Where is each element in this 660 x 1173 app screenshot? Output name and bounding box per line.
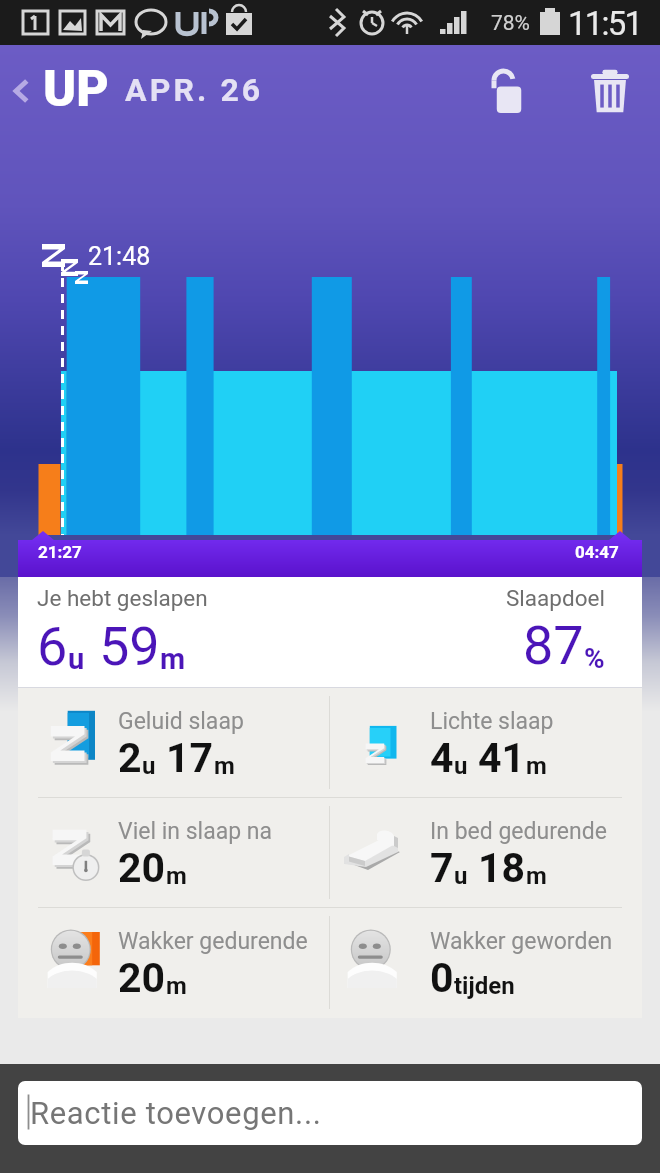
staticText: Slaapdoel <box>506 585 605 611</box>
staticText: u <box>68 642 85 676</box>
staticText: 17 <box>166 734 214 782</box>
staticText: m <box>166 862 187 890</box>
staticText: Reactie toevoegen... <box>30 1095 322 1131</box>
button[interactable]: Viel in slaap na <box>18 798 329 907</box>
staticText: In bed gedurende <box>430 818 607 845</box>
button[interactable]: Wakker geworden <box>330 908 642 1017</box>
button[interactable]: Reactie toevoegen... <box>18 1081 642 1145</box>
staticText: 87 <box>523 614 584 677</box>
staticText: m <box>214 752 235 780</box>
staticText: m <box>166 972 187 1000</box>
staticText: Viel in slaap na <box>118 818 273 845</box>
staticText: m <box>526 752 547 780</box>
staticText: 20 <box>118 954 166 1002</box>
staticText: Geluid slaap <box>118 708 244 735</box>
staticText: Je hebt geslapen <box>37 585 208 611</box>
button[interactable]: In bed gedurende <box>330 798 642 907</box>
staticText: 41 <box>478 734 526 782</box>
staticText: 20 <box>118 844 166 892</box>
button[interactable]: Unlock <box>480 63 536 119</box>
staticText: 78% <box>491 11 530 36</box>
staticText: 7 <box>430 844 454 892</box>
staticText: % <box>584 642 605 675</box>
staticText: u <box>142 752 156 780</box>
button[interactable]: Je hebt geslapen <box>18 577 642 687</box>
button[interactable]: Lichte slaap <box>330 688 642 797</box>
staticText: APR. 26 <box>125 71 264 109</box>
staticText: 0 <box>430 954 454 1002</box>
button[interactable]: Back <box>2 71 42 111</box>
staticText: u <box>454 752 468 780</box>
staticText: u <box>454 862 468 890</box>
staticText: 21:27 <box>38 542 82 562</box>
staticText: m <box>526 862 547 890</box>
staticText: tijden <box>454 972 515 1000</box>
staticText: 59 <box>99 615 160 678</box>
staticText: 2 <box>118 734 142 782</box>
staticText: Wakker gedurende <box>118 928 308 955</box>
staticText: 6 <box>37 615 68 678</box>
button[interactable]: Wakker gedurende <box>18 908 329 1017</box>
staticText: UP <box>43 60 109 119</box>
staticText: m <box>160 642 186 676</box>
staticText: 04:47 <box>575 542 619 562</box>
staticText: 18 <box>478 844 526 892</box>
button[interactable]: Geluid slaap <box>18 688 329 797</box>
staticText: 11:51 <box>568 4 642 43</box>
staticText: Wakker geworden <box>430 928 613 955</box>
button[interactable]: Delete <box>582 63 638 119</box>
staticText: 4 <box>430 734 454 782</box>
staticText: 21:48 <box>88 242 151 271</box>
staticText: Lichte slaap <box>430 708 554 735</box>
